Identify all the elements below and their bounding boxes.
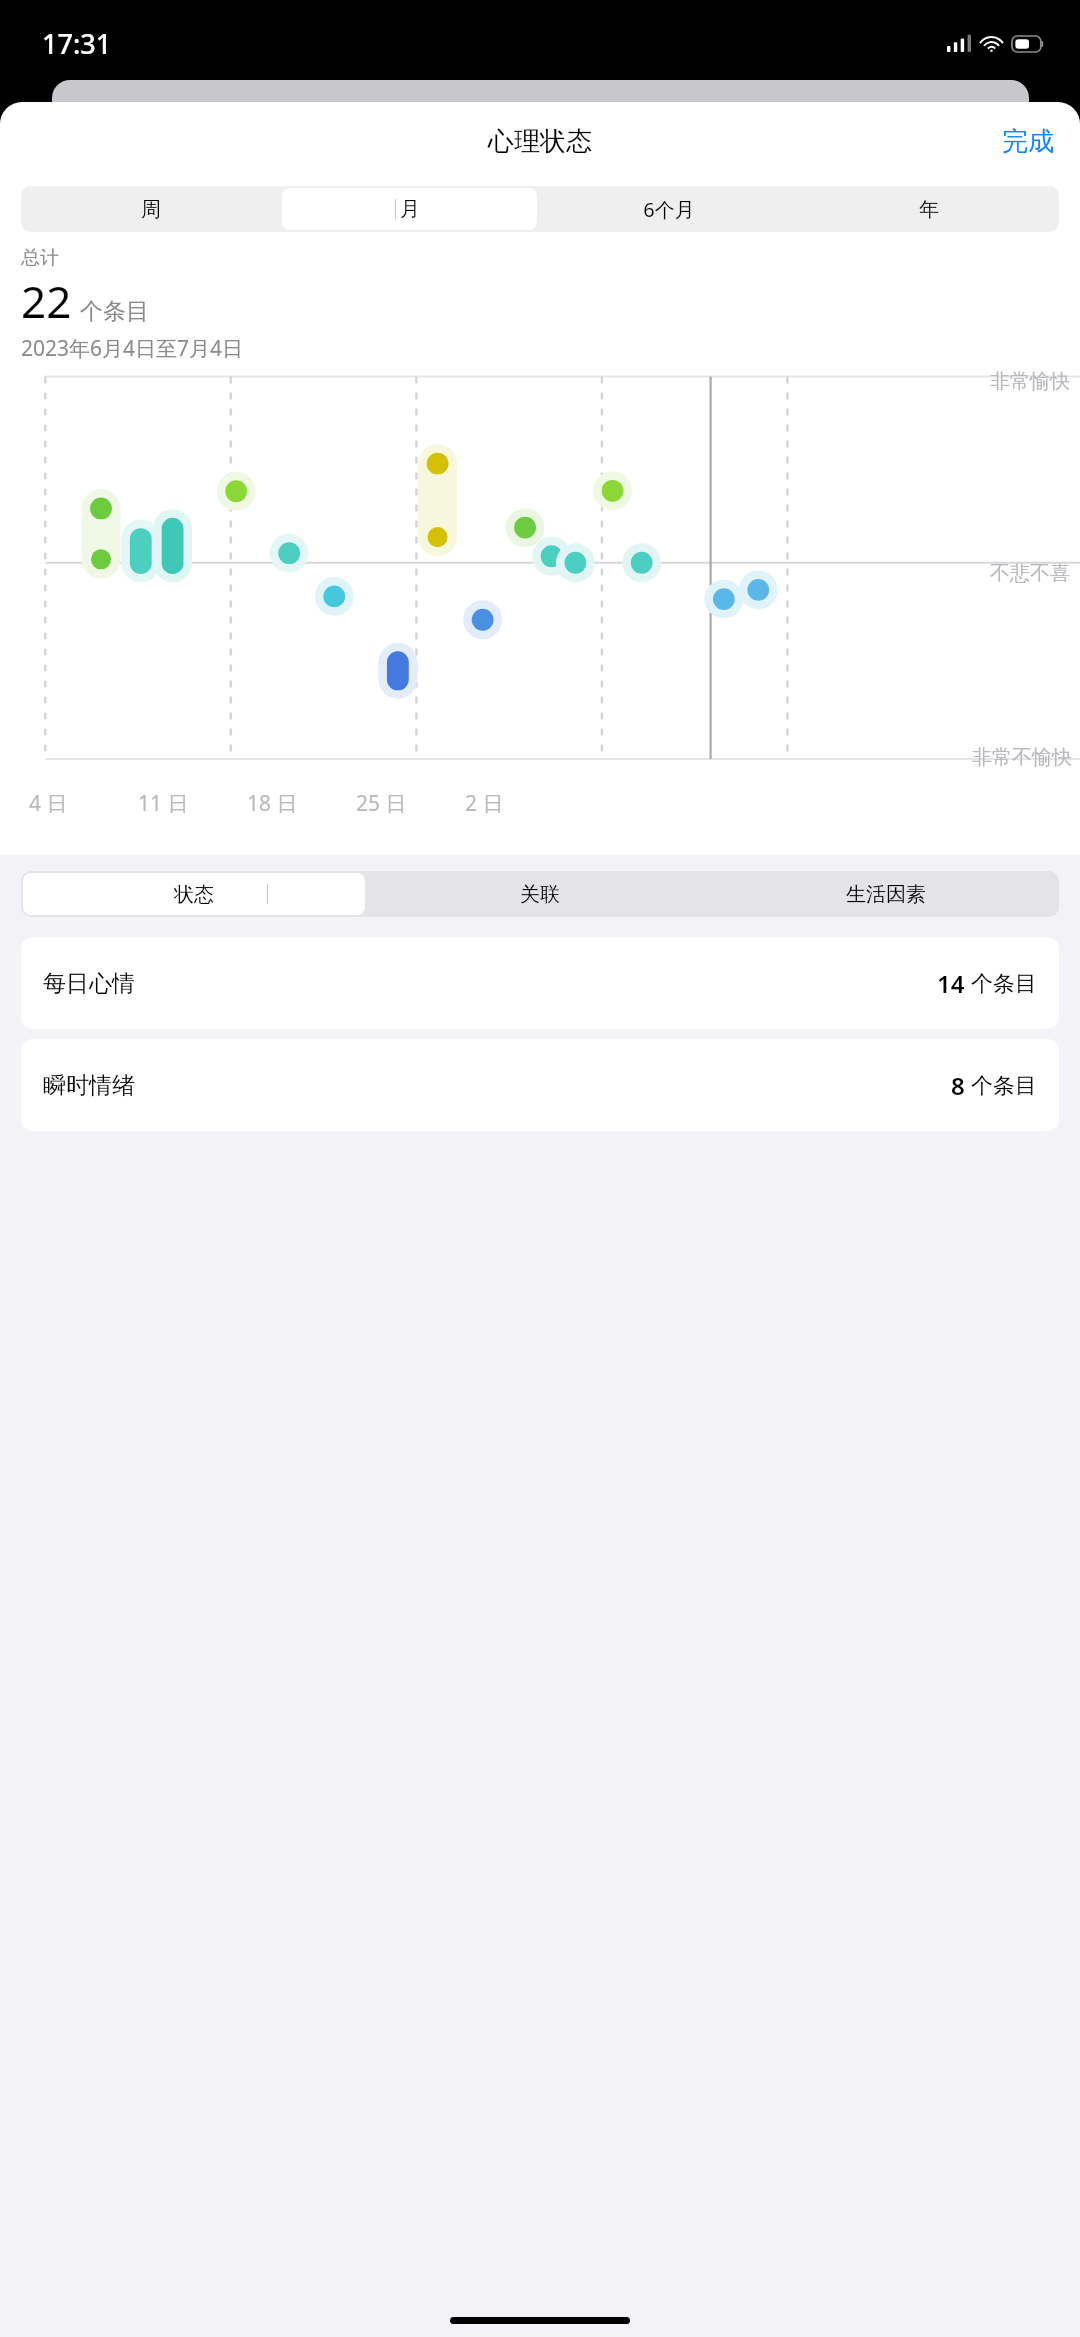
staticText: 4 日 <box>29 789 68 818</box>
staticText: 11 日 <box>138 789 189 818</box>
staticText: 8 <box>951 1069 965 1102</box>
staticText: 2 日 <box>465 789 504 818</box>
staticText: 年 <box>919 197 939 222</box>
button[interactable]: 瞬时情绪 <box>21 1039 1059 1131</box>
staticText: 个条目 <box>80 297 149 326</box>
button[interactable]: 6个月 <box>541 188 797 230</box>
staticText: 心理状态 <box>488 125 592 158</box>
button[interactable]: 关联 <box>369 873 711 915</box>
staticText: 14 <box>937 967 965 1000</box>
staticText: 状态 <box>174 882 214 907</box>
staticText: 6个月 <box>643 196 695 223</box>
staticText: 17:31 <box>42 25 112 62</box>
button[interactable]: 生活因素 <box>715 873 1057 915</box>
staticText: 22 <box>21 271 72 331</box>
staticText: 关联 <box>520 882 560 907</box>
button[interactable]: 年 <box>801 188 1057 230</box>
staticText: 瞬时情绪 <box>43 1071 135 1100</box>
staticText: 周 <box>141 197 161 222</box>
staticText: 个条目 <box>971 970 1037 998</box>
button[interactable]: 状态 <box>23 873 365 915</box>
button[interactable]: 月 <box>282 188 537 230</box>
staticText: 不悲不喜 <box>990 561 1070 586</box>
button[interactable]: 完成 <box>976 115 1080 168</box>
button[interactable]: 每日心情 <box>21 937 1059 1029</box>
button[interactable]: 周 <box>23 188 278 230</box>
staticText: 非常愉快 <box>990 369 1070 394</box>
staticText: 18 日 <box>247 789 298 818</box>
staticText: 2023年6月4日至7月4日 <box>21 334 244 363</box>
staticText: 完成 <box>1002 125 1054 158</box>
staticText: 非常不愉快 <box>972 745 1072 770</box>
staticText: 个条目 <box>971 1072 1037 1100</box>
staticText: 总计 <box>21 246 59 270</box>
staticText: 生活因素 <box>846 882 926 907</box>
staticText: 25 日 <box>356 789 407 818</box>
staticText: 每日心情 <box>43 969 135 998</box>
staticText: 月 <box>400 197 420 222</box>
